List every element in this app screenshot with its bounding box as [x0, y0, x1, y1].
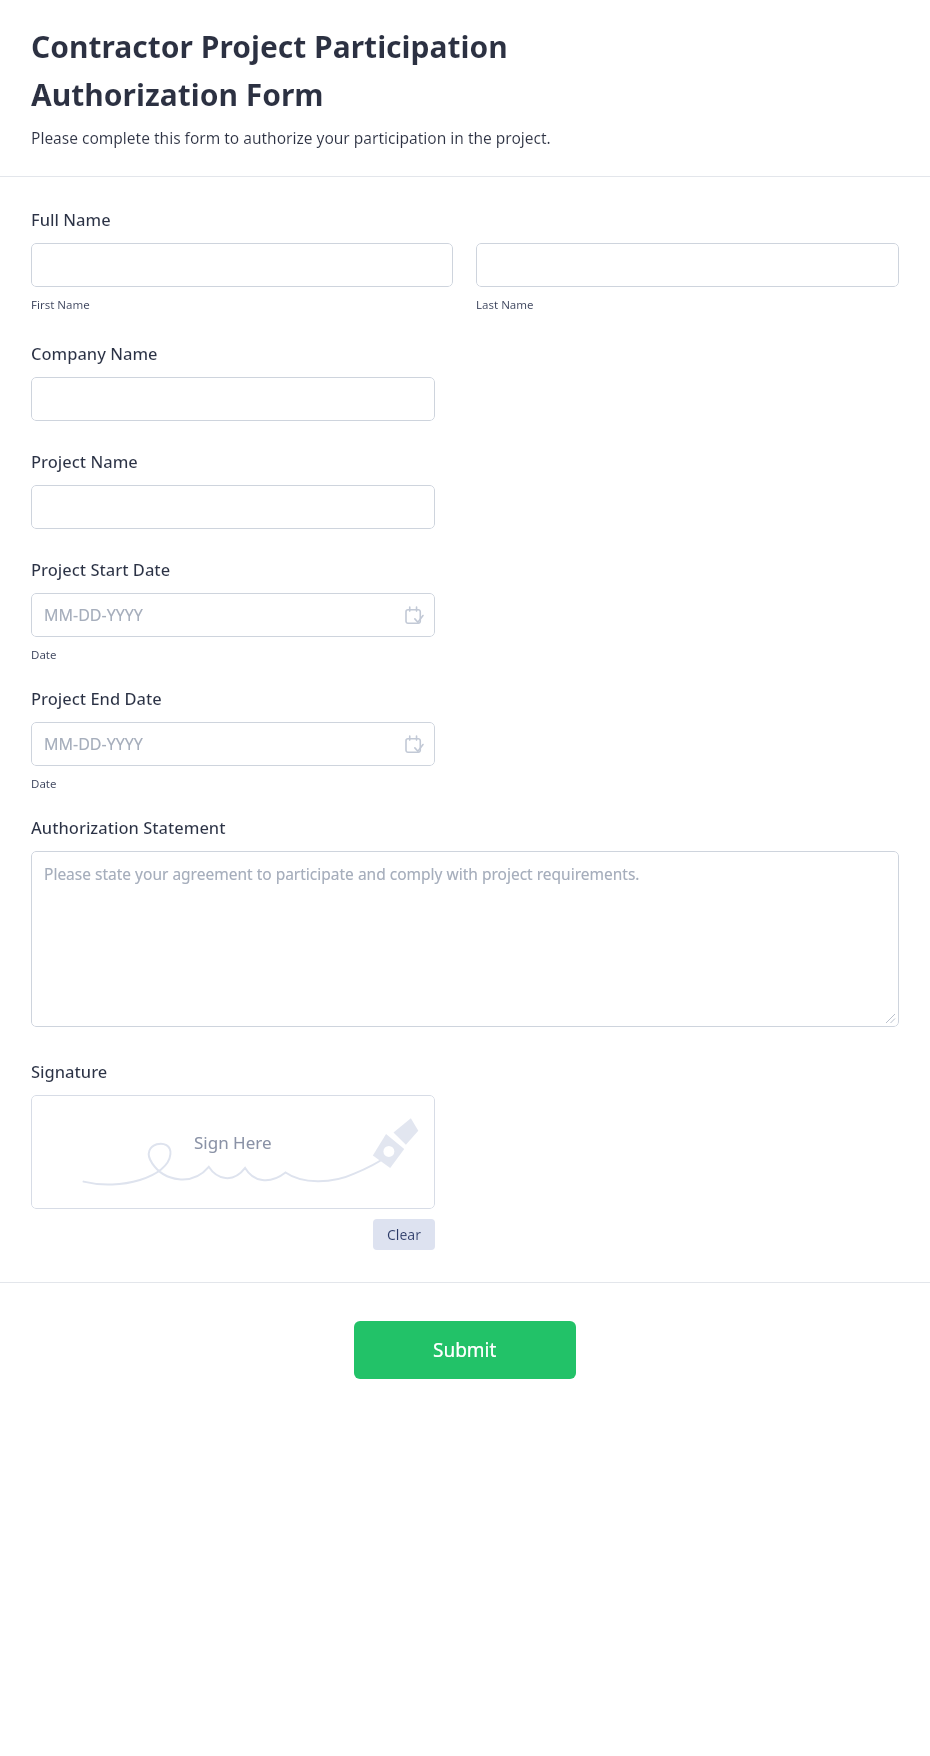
staticText: Please state your agreement to participa… [44, 863, 640, 884]
staticText: Project Start Date [31, 558, 171, 580]
button[interactable]: Clear [373, 1219, 435, 1250]
button[interactable]: Submit [354, 1321, 576, 1379]
button[interactable] [31, 485, 435, 529]
staticText: Submit [433, 1337, 497, 1363]
button[interactable]: Please state your agreement to participa… [31, 851, 899, 1027]
staticText: First Name [31, 297, 90, 313]
button[interactable] [31, 243, 453, 287]
staticText: Please complete this form to authorize y… [31, 127, 551, 148]
staticText: Sign Here [194, 1131, 272, 1154]
staticText: Clear [387, 1225, 421, 1244]
staticText: Date [31, 647, 57, 663]
staticText: Authorization Form [31, 74, 324, 115]
button[interactable] [476, 243, 899, 287]
staticText: Last Name [476, 297, 534, 313]
staticText: Project End Date [31, 687, 162, 709]
staticText: MM-DD-YYYY [44, 604, 143, 626]
staticText: Project Name [31, 450, 138, 472]
staticText: Date [31, 776, 57, 792]
button[interactable]: Signature pad [31, 1095, 435, 1209]
staticText: Authorization Statement [31, 816, 226, 838]
button[interactable] [31, 377, 435, 421]
staticText: Company Name [31, 342, 158, 364]
staticText: Full Name [31, 208, 111, 230]
staticText: Signature [31, 1060, 108, 1082]
button[interactable]: MM-DD-YYYY [31, 722, 435, 766]
button[interactable]: MM-DD-YYYY [31, 593, 435, 637]
staticText: Contractor Project Participation [31, 26, 508, 67]
staticText: MM-DD-YYYY [44, 733, 143, 755]
